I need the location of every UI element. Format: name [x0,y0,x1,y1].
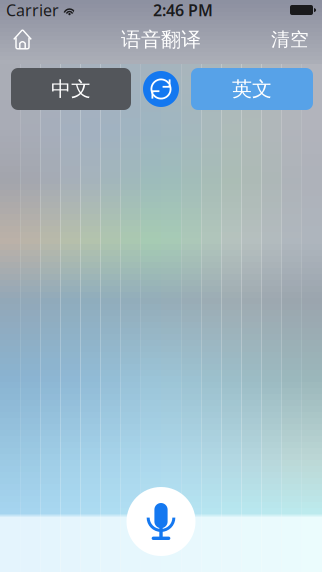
staticText: 中文 [51,77,91,101]
button[interactable]: Home [0,17,42,61]
staticText: 2:46 PM [153,0,213,21]
staticText: 清空 [271,28,309,51]
staticText: Carrier [6,0,59,21]
staticText: 语音翻译 [121,27,201,52]
button[interactable]: Start recording [126,487,195,556]
button[interactable]: Swap languages [143,71,179,107]
button[interactable]: 中文 [11,68,131,110]
button[interactable]: 清空 [261,17,322,61]
button[interactable]: 英文 [191,68,313,110]
staticText: 英文 [232,77,272,101]
